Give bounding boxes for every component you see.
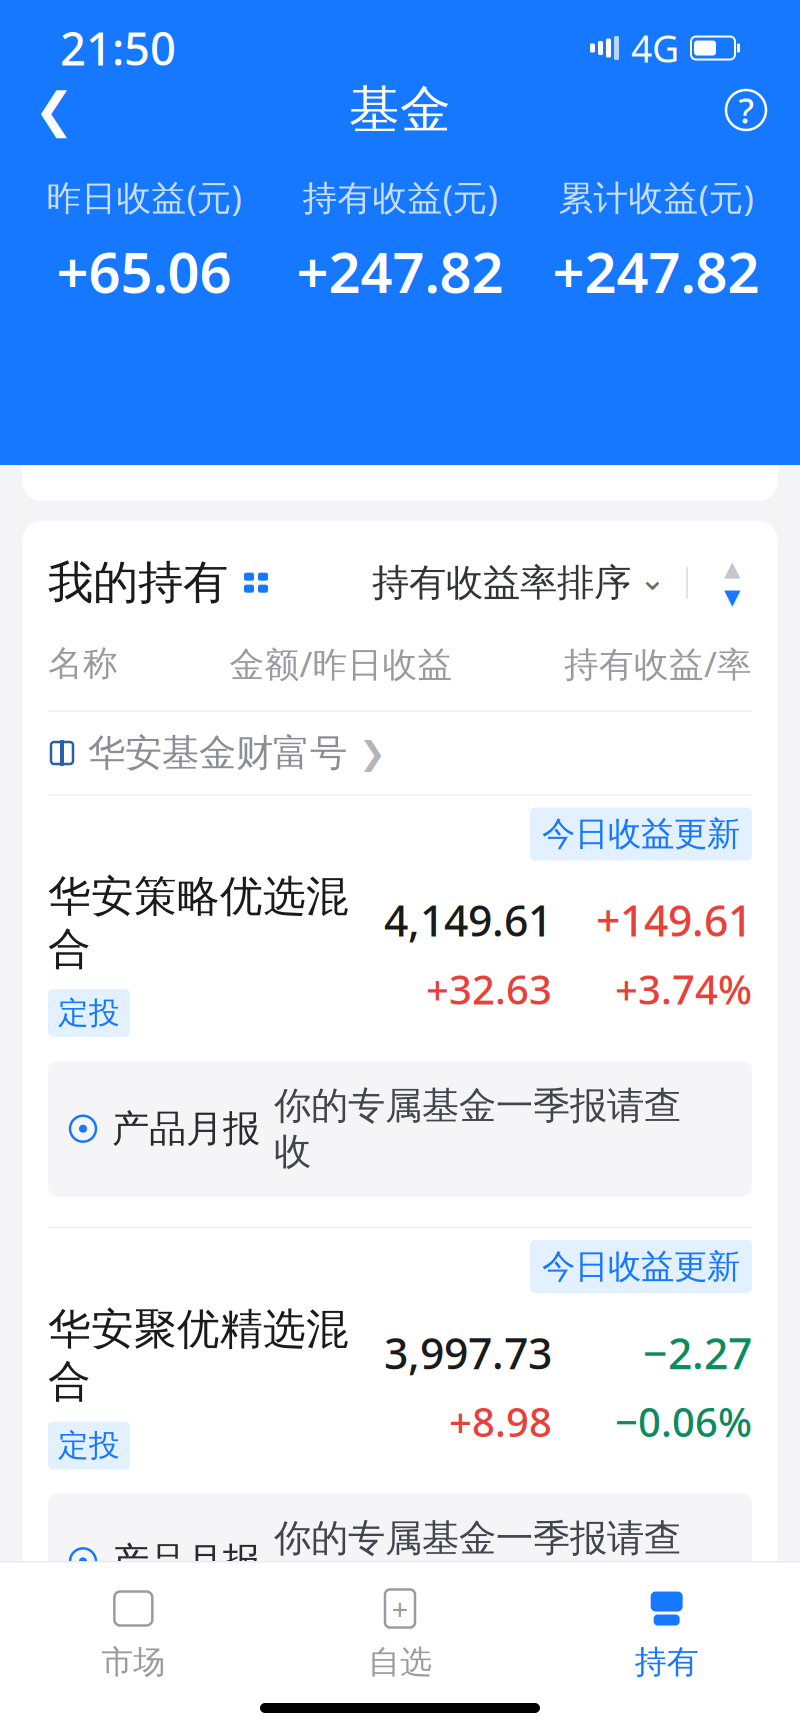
staticText: 华安聚优精选混合 <box>48 1303 349 1408</box>
staticText: 持有收益(元) <box>302 174 497 220</box>
staticText: 定投 <box>58 1427 120 1464</box>
staticText: ▼ <box>724 585 740 609</box>
button[interactable]: 今日收益更新 <box>22 795 778 1061</box>
staticText: ? <box>738 87 753 133</box>
staticText: 名称 <box>48 642 118 685</box>
staticText: 产品月报 <box>112 1106 260 1152</box>
staticText: +32.63 <box>426 962 552 1015</box>
staticText: 你的专属基金一季报请查收 <box>274 1083 681 1175</box>
staticText: 基金 <box>349 79 451 141</box>
button[interactable]: + <box>267 1580 533 1688</box>
staticText: 华安策略优选混合 <box>48 870 349 975</box>
staticText: +247.82 <box>296 234 503 308</box>
staticText: +247.82 <box>552 234 759 308</box>
staticText: 市场 <box>101 1642 165 1682</box>
staticText: 易方达基金财富号 <box>88 1679 384 1725</box>
staticText: + <box>391 1589 408 1628</box>
button[interactable]: 切换视图 <box>240 567 272 599</box>
staticText: 4,149.61 <box>384 892 552 948</box>
staticText: 21:50 <box>60 18 176 78</box>
staticText: 自选 <box>368 1642 432 1682</box>
staticText: +65.06 <box>56 234 231 308</box>
button[interactable]: 产品月报 <box>22 1061 778 1227</box>
button[interactable]: 产品月报 <box>22 1493 778 1659</box>
staticText: 华安基金财富号 <box>88 730 347 776</box>
staticText: +8.98 <box>449 1395 552 1448</box>
staticText: 累计收益(元) <box>558 174 753 220</box>
button[interactable]: 华安基金财富号 <box>22 712 778 794</box>
staticText: 产品月报 <box>112 1538 260 1584</box>
staticText: −2.27 <box>643 1324 752 1381</box>
button[interactable]: 排序方向 <box>712 560 752 606</box>
staticText: −0.06% <box>615 1395 752 1448</box>
staticText: 今日收益更新 <box>542 813 740 854</box>
staticText: 持有收益/率 <box>564 640 752 686</box>
staticText: 昨日收益(元) <box>46 174 241 220</box>
staticText: ▲ <box>724 556 740 581</box>
button[interactable]: 市场 <box>0 1580 267 1688</box>
button[interactable]: 帮助 <box>714 78 778 142</box>
staticText: +3.74% <box>615 962 752 1015</box>
button[interactable]: 持有 <box>533 1580 800 1688</box>
staticText: 我的持有 <box>48 555 228 611</box>
staticText: 持有收益率排序 <box>372 560 631 606</box>
staticText: 定投 <box>58 994 120 1032</box>
staticText: ❯ <box>359 735 386 771</box>
button[interactable]: 易方达基金财富号 <box>22 1661 778 1731</box>
staticText: 持有 <box>635 1642 699 1682</box>
staticText: 你的专属基金一季报请查收 <box>274 1515 681 1607</box>
staticText: 今日收益更新 <box>542 1246 740 1287</box>
staticText: 金额/昨日收益 <box>229 640 452 686</box>
staticText: ❮ <box>34 83 74 137</box>
button[interactable]: 今日收益更新 <box>22 1228 778 1493</box>
staticText: ❯ <box>396 1683 423 1720</box>
button[interactable]: 持有收益率排序 <box>372 560 666 606</box>
staticText: 4G <box>631 23 679 73</box>
button[interactable]: 返回 <box>22 78 86 142</box>
staticText: +149.61 <box>596 892 752 948</box>
staticText: 3,997.73 <box>384 1324 552 1381</box>
staticText: ⌄ <box>639 560 666 597</box>
